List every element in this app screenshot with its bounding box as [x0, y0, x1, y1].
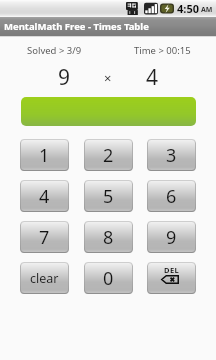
staticText: 1 [39, 143, 50, 168]
button[interactable]: clear [20, 262, 69, 294]
staticText: 4 [146, 63, 159, 92]
button[interactable] [21, 97, 196, 126]
staticText: 6 [166, 184, 177, 209]
staticText: Time > 00:15 [134, 44, 191, 57]
staticText: 4 [39, 184, 50, 209]
staticText: 2 [103, 143, 114, 168]
button[interactable]: 3 [147, 139, 196, 171]
button[interactable]: 0 [84, 262, 133, 294]
staticText: 9 [58, 63, 71, 92]
staticText: clear [30, 270, 59, 287]
staticText: 9 [166, 225, 177, 250]
staticText: AM [201, 5, 213, 15]
staticText: 8 [103, 225, 114, 250]
button[interactable]: Delete [147, 262, 196, 294]
button[interactable]: 1 [20, 139, 69, 171]
staticText: MentalMath Free - Times Table [4, 20, 149, 33]
staticText: DEL [164, 265, 180, 275]
button[interactable]: 8 [84, 221, 133, 253]
button[interactable]: 2 [84, 139, 133, 171]
staticText: × [104, 69, 112, 87]
button[interactable]: 7 [20, 221, 69, 253]
staticText: 4:50 [177, 1, 199, 16]
button[interactable]: 4 [20, 180, 69, 212]
staticText: 0 [103, 266, 114, 291]
staticText: Solved > 3/9 [27, 44, 82, 57]
button[interactable]: 9 [147, 221, 196, 253]
button[interactable]: 5 [84, 180, 133, 212]
button[interactable]: 6 [147, 180, 196, 212]
staticText: 3 [166, 143, 177, 168]
staticText: 7 [39, 225, 50, 250]
staticText: 5 [103, 184, 114, 209]
